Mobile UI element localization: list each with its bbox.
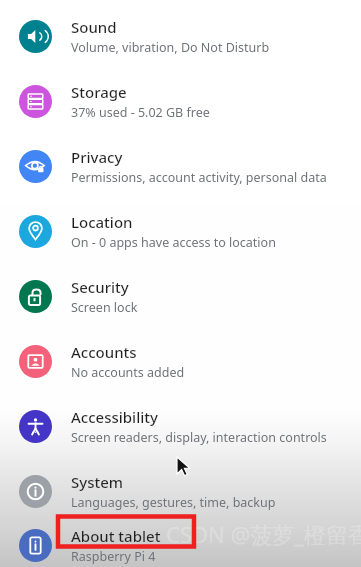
staticText: 37% used - 5.02 GB free bbox=[71, 104, 210, 121]
staticText: Accounts bbox=[71, 342, 137, 362]
staticText: About tablet bbox=[71, 526, 161, 546]
staticText: Permissions, account activity, personal … bbox=[71, 169, 327, 186]
staticText: Sound bbox=[71, 17, 117, 37]
button[interactable]: Sound bbox=[0, 4, 361, 69]
staticText: Raspberry Pi 4 bbox=[71, 548, 156, 565]
button[interactable]: Storage bbox=[0, 69, 361, 134]
staticText: Volume, vibration, Do Not Disturb bbox=[71, 39, 270, 56]
staticText: Privacy bbox=[71, 147, 123, 167]
staticText: System bbox=[71, 472, 124, 492]
staticText: Location bbox=[71, 212, 133, 232]
staticText: Storage bbox=[71, 82, 127, 102]
staticText: Screen lock bbox=[71, 299, 138, 316]
staticText: Languages, gestures, time, backup bbox=[71, 494, 276, 511]
button[interactable]: Location bbox=[0, 199, 361, 264]
button[interactable]: Accessibility bbox=[0, 394, 361, 459]
staticText: CSDN @菠萝_橙留香 bbox=[166, 519, 361, 549]
button[interactable]: About tablet bbox=[0, 524, 361, 567]
staticText: Screen readers, display, interaction con… bbox=[71, 429, 327, 446]
staticText: Security bbox=[71, 277, 129, 297]
button[interactable]: System bbox=[0, 459, 361, 524]
button[interactable]: Security bbox=[0, 264, 361, 329]
button[interactable]: Accounts bbox=[0, 329, 361, 394]
staticText: On - 0 apps have access to location bbox=[71, 234, 276, 251]
staticText: Accessibility bbox=[71, 407, 158, 427]
button[interactable]: Privacy bbox=[0, 134, 361, 199]
staticText: No accounts added bbox=[71, 364, 185, 381]
